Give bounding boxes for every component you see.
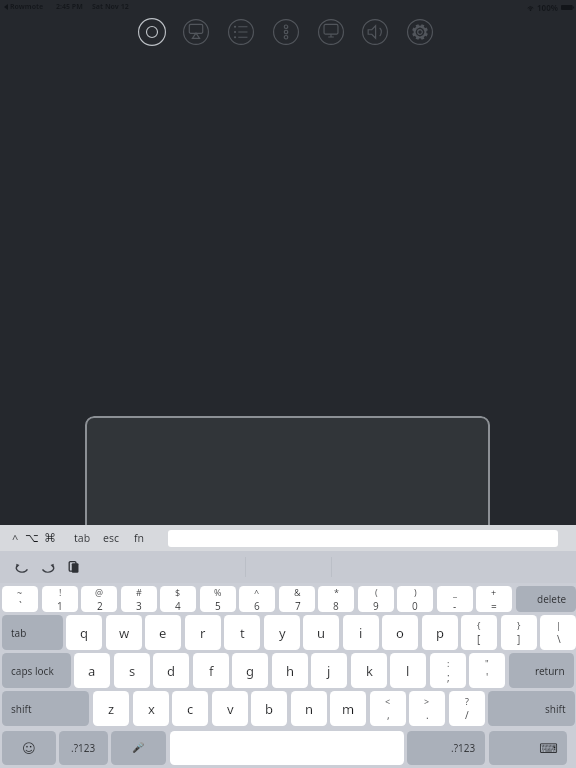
staticText: 2 [97, 599, 103, 612]
button[interactable]: s [114, 653, 150, 688]
button[interactable]: .?123 [407, 731, 485, 765]
button[interactable]: { [461, 615, 497, 650]
button[interactable]: shift [488, 691, 575, 726]
button[interactable]: i [343, 615, 379, 650]
button[interactable]: f [193, 653, 229, 688]
staticText: 9 [373, 599, 379, 612]
button[interactable]: t [224, 615, 260, 650]
button[interactable]: Trackpad [85, 416, 490, 556]
button[interactable]: w [106, 615, 142, 650]
button[interactable]: * [318, 586, 354, 612]
button[interactable]: h [272, 653, 308, 688]
button[interactable]: e [145, 615, 181, 650]
button[interactable]: ⌘ [36, 525, 64, 551]
button[interactable]: m [330, 691, 366, 726]
button[interactable]: delete [516, 586, 576, 612]
staticText: / [465, 708, 469, 722]
staticText: z [108, 700, 115, 718]
staticText: - [453, 599, 457, 612]
button[interactable]: v [212, 691, 248, 726]
button[interactable]: list [225, 16, 257, 48]
button[interactable]: @ [81, 586, 117, 612]
button[interactable]: ) [397, 586, 433, 612]
button[interactable]: ☺ [2, 731, 56, 765]
button[interactable]: & [279, 586, 315, 612]
staticText: Rowmote [10, 2, 44, 12]
button[interactable]: d [153, 653, 189, 688]
button[interactable]: dots [270, 16, 302, 48]
button[interactable]: # [121, 586, 157, 612]
staticText: ` [19, 599, 22, 612]
button[interactable]: $ [160, 586, 196, 612]
button[interactable]: x [133, 691, 169, 726]
staticText: g [246, 662, 254, 680]
button[interactable]: q [66, 615, 102, 650]
button[interactable]: u [303, 615, 339, 650]
button[interactable]: .?123 [59, 731, 108, 765]
button[interactable]: } [501, 615, 537, 650]
staticText: fn [134, 531, 145, 545]
button[interactable]: + [476, 586, 512, 612]
button[interactable]: esc [97, 525, 125, 551]
button[interactable]: % [200, 586, 236, 612]
staticText: tab [11, 626, 27, 640]
button[interactable]: k [351, 653, 387, 688]
button[interactable]: g [232, 653, 268, 688]
staticText: 3 [136, 599, 142, 612]
staticText: s [129, 662, 136, 680]
button[interactable]: ! [42, 586, 78, 612]
button[interactable]: " [469, 653, 505, 688]
button[interactable]: o [382, 615, 418, 650]
button[interactable]: l [390, 653, 426, 688]
button[interactable]: < [370, 691, 406, 726]
button[interactable]: n [291, 691, 327, 726]
staticText: shift [545, 702, 566, 716]
button[interactable]: airplay [180, 16, 212, 48]
button[interactable]: ⌨ [489, 731, 567, 765]
staticText: \ [557, 632, 561, 646]
button[interactable]: ~ [2, 586, 38, 612]
button[interactable]: tv [315, 16, 347, 48]
staticText: tab [74, 531, 91, 545]
button[interactable]: _ [437, 586, 473, 612]
button[interactable]: fn [125, 525, 153, 551]
button[interactable]: c [172, 691, 208, 726]
staticText: 100% [537, 2, 558, 13]
button[interactable]: > [409, 691, 445, 726]
button[interactable]: a [74, 653, 110, 688]
staticText: 5 [215, 599, 221, 612]
button[interactable]: Redo [38, 557, 58, 577]
button[interactable]: 🎤 [111, 731, 166, 765]
button[interactable]: tab [2, 615, 63, 650]
button[interactable]: j [311, 653, 347, 688]
button[interactable]: shift [2, 691, 89, 726]
button[interactable]: ? [449, 691, 485, 726]
button[interactable]: Paste [64, 557, 84, 577]
button[interactable]: caps lock [2, 653, 71, 688]
button[interactable]: Undo [12, 557, 32, 577]
button[interactable]: ^ [239, 586, 275, 612]
staticText: caps lock [11, 664, 54, 678]
button[interactable]: volume [359, 16, 391, 48]
button[interactable]: p [422, 615, 458, 650]
button[interactable]: settings [404, 16, 436, 48]
button[interactable]: remote [136, 16, 168, 48]
button[interactable]: ^ [1, 525, 29, 551]
button[interactable]: ( [358, 586, 394, 612]
staticText: return [535, 664, 565, 678]
staticText: ( [375, 586, 378, 598]
button[interactable]: return [509, 653, 574, 688]
button[interactable]: ⌥ [18, 525, 46, 551]
staticText: ; [447, 670, 450, 684]
button[interactable]: r [185, 615, 221, 650]
button[interactable]: b [251, 691, 287, 726]
button[interactable]: : [430, 653, 466, 688]
staticText: m [342, 700, 355, 718]
staticText: , [387, 708, 390, 722]
button[interactable]: | [540, 615, 576, 650]
button[interactable]: z [93, 691, 129, 726]
button[interactable]: tab [68, 525, 96, 551]
button[interactable]: y [264, 615, 300, 650]
